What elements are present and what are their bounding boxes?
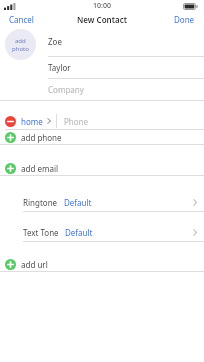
button[interactable]: Add url <box>0 257 204 271</box>
button[interactable]: Cancel <box>0 12 43 27</box>
staticText: Company <box>48 84 84 95</box>
staticText: add url <box>21 259 48 270</box>
staticText: Default <box>64 197 92 208</box>
staticText: Zoe <box>48 36 62 47</box>
button[interactable]: Company <box>44 79 204 100</box>
button[interactable]: Taylor <box>44 57 204 78</box>
staticText: Cancel <box>9 14 34 25</box>
staticText: Phone <box>64 116 89 127</box>
staticText: add phone <box>21 132 62 143</box>
staticText: Done <box>174 14 195 25</box>
staticText: Taylor <box>48 62 71 73</box>
button[interactable]: Add photo <box>5 29 36 60</box>
staticText: add <box>15 37 26 45</box>
other: Battery <box>183 3 198 10</box>
staticText: home <box>21 116 43 127</box>
staticText: New Contact <box>77 14 127 25</box>
button[interactable]: home <box>0 113 204 129</box>
button[interactable]: Text Tone <box>0 224 204 241</box>
button[interactable]: Ringtone <box>0 194 204 211</box>
staticText: Ringtone <box>23 197 58 208</box>
button[interactable]: Add email <box>0 161 204 175</box>
button[interactable]: Add phone <box>0 130 204 144</box>
staticText: 10:00 <box>93 1 111 11</box>
staticText: add email <box>21 163 59 174</box>
staticText: Default <box>65 227 93 238</box>
staticText: photo <box>12 45 29 53</box>
button[interactable]: Zoe <box>44 27 204 56</box>
button[interactable]: Done <box>165 12 204 27</box>
staticText: Text Tone <box>23 227 59 238</box>
other: Signal strength <box>4 3 15 10</box>
